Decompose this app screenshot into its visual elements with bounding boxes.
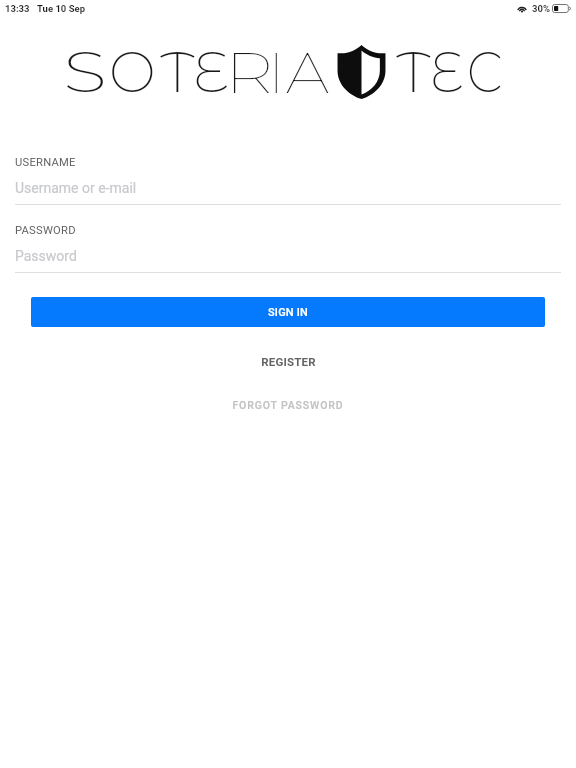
other: Wi-Fi xyxy=(517,5,527,12)
button[interactable]: FORGOT PASSWORD xyxy=(218,396,358,414)
staticText: SIGN IN xyxy=(268,306,309,319)
staticText: T xyxy=(160,37,195,106)
staticText: FORGOT PASSWORD xyxy=(232,399,344,411)
staticText: A xyxy=(286,37,329,108)
staticText: E xyxy=(193,37,229,106)
staticText: Username or e-mail xyxy=(15,180,137,196)
staticText: S xyxy=(63,37,108,106)
other: Battery 30 percent xyxy=(552,4,571,13)
staticText: REGISTER xyxy=(261,355,316,368)
staticText: Tue 10 Sep xyxy=(37,3,85,14)
staticText: O xyxy=(109,37,156,106)
staticText: Password xyxy=(15,248,77,264)
staticText: E xyxy=(430,37,464,106)
staticText: 30% xyxy=(532,3,550,14)
button[interactable]: REGISTER xyxy=(247,352,330,371)
staticText: T xyxy=(396,37,431,106)
staticText: USERNAME xyxy=(15,156,76,169)
staticText: PASSWORD xyxy=(15,224,76,237)
button[interactable]: SIGN IN xyxy=(31,297,545,327)
staticText: R xyxy=(225,37,274,108)
staticText: C xyxy=(467,37,503,106)
staticText: 13:33 xyxy=(5,3,30,14)
staticText: I xyxy=(268,37,285,108)
